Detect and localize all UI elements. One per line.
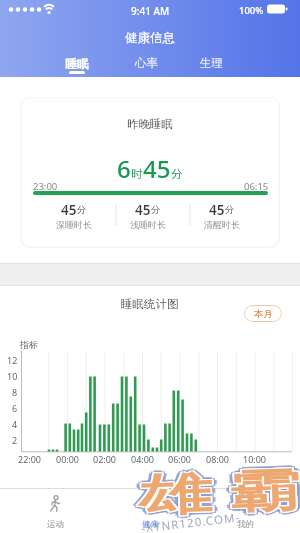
staticText: 雄霸	[125, 463, 300, 524]
staticText: 浅睡时长	[130, 219, 166, 230]
staticText: 清醒时长	[204, 219, 240, 230]
staticText: 深睡时长	[56, 219, 92, 230]
staticText: 6	[12, 402, 18, 414]
staticText: 雄霸	[130, 463, 300, 524]
staticText: 雄霸	[128, 464, 300, 525]
staticText: 分	[171, 167, 183, 181]
staticText: 2	[12, 434, 18, 446]
staticText: 心率	[135, 56, 158, 70]
staticText: 雄霸	[127, 465, 300, 526]
staticText: 45	[61, 201, 77, 217]
staticText: 健康信息	[125, 30, 175, 46]
button[interactable]: 我的	[220, 489, 270, 533]
button[interactable]: 本月	[244, 305, 282, 322]
staticText: 雄霸	[130, 464, 300, 525]
staticText: 04:00	[131, 453, 155, 465]
staticText: 时	[131, 167, 143, 181]
staticText: 雄霸	[130, 462, 300, 523]
staticText: 100%	[239, 4, 264, 17]
staticText: 雄霸	[135, 463, 300, 524]
staticText: 10	[7, 370, 18, 382]
staticText: 08:00	[206, 453, 230, 465]
staticText: 分	[151, 204, 161, 216]
staticText: 运动	[47, 519, 64, 530]
staticText: 睡眠统计图	[121, 297, 179, 311]
staticText: 45	[135, 201, 151, 217]
staticText: 4	[12, 418, 18, 430]
staticText: 雄霸	[128, 462, 300, 523]
staticText: 雄霸	[127, 461, 300, 522]
staticText: 睡眠	[65, 56, 89, 71]
staticText: 生理	[200, 56, 223, 70]
staticText: 雄霸	[132, 463, 300, 524]
staticText: 23:00	[33, 180, 58, 193]
staticText: 雄霸	[133, 465, 300, 526]
button[interactable]: 昨晚睡眠	[22, 98, 278, 246]
button[interactable]: 运动	[30, 489, 80, 533]
staticText: 10:00	[243, 453, 267, 465]
staticText: 06:00	[168, 453, 192, 465]
staticText: 分	[225, 204, 235, 216]
staticText: 雄霸	[130, 466, 300, 527]
button[interactable]: 生理	[189, 52, 233, 74]
staticText: 我的	[237, 519, 254, 530]
staticText: 健康	[142, 519, 159, 530]
staticText: 06:15	[244, 180, 269, 193]
staticText: 00:00	[56, 453, 80, 465]
button[interactable]: 心率	[124, 52, 168, 74]
staticText: 昨晚睡眠	[127, 117, 173, 131]
staticText: 雄霸	[132, 462, 300, 523]
staticText: 雄霸	[133, 461, 300, 522]
button[interactable]: 健康	[125, 489, 175, 533]
staticText: 雄霸	[132, 464, 300, 525]
staticText: 6	[117, 152, 131, 184]
staticText: 指标	[20, 339, 38, 350]
staticText: 本月	[254, 308, 273, 320]
button[interactable]: 睡眠	[55, 52, 99, 74]
staticText: 45	[209, 201, 225, 217]
staticText: -XYNR120.COM-	[140, 509, 242, 533]
staticText: 雄霸	[130, 460, 300, 521]
staticText: 分	[77, 204, 87, 216]
staticText: 12	[7, 354, 18, 366]
staticText: 雄霸	[128, 463, 300, 524]
staticText: 9:41 AM	[131, 4, 170, 18]
staticText: 02:00	[93, 453, 117, 465]
staticText: 22:00	[18, 453, 42, 465]
staticText: 8	[12, 386, 18, 398]
staticText: 45	[143, 152, 171, 184]
